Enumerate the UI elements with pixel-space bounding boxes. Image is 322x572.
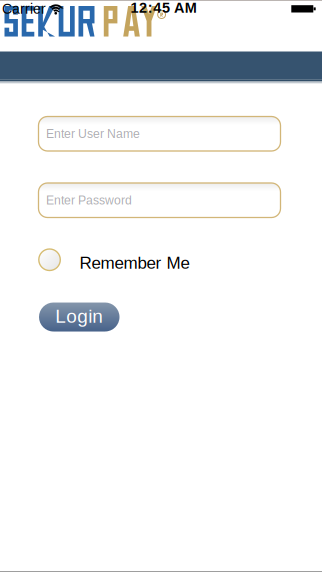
button[interactable]: Enter User Name bbox=[38, 116, 280, 151]
staticText: 12:45 AM bbox=[130, 0, 197, 16]
staticText: Login bbox=[55, 306, 103, 327]
staticText: Enter User Name bbox=[46, 127, 140, 140]
staticText: Remember Me bbox=[79, 253, 189, 272]
staticText: Enter Password bbox=[46, 193, 132, 207]
button[interactable]: Enter Password bbox=[38, 183, 280, 217]
staticText: Carrier bbox=[2, 1, 46, 17]
button[interactable]: Remember Me bbox=[39, 249, 191, 271]
button[interactable]: Login bbox=[39, 302, 119, 331]
